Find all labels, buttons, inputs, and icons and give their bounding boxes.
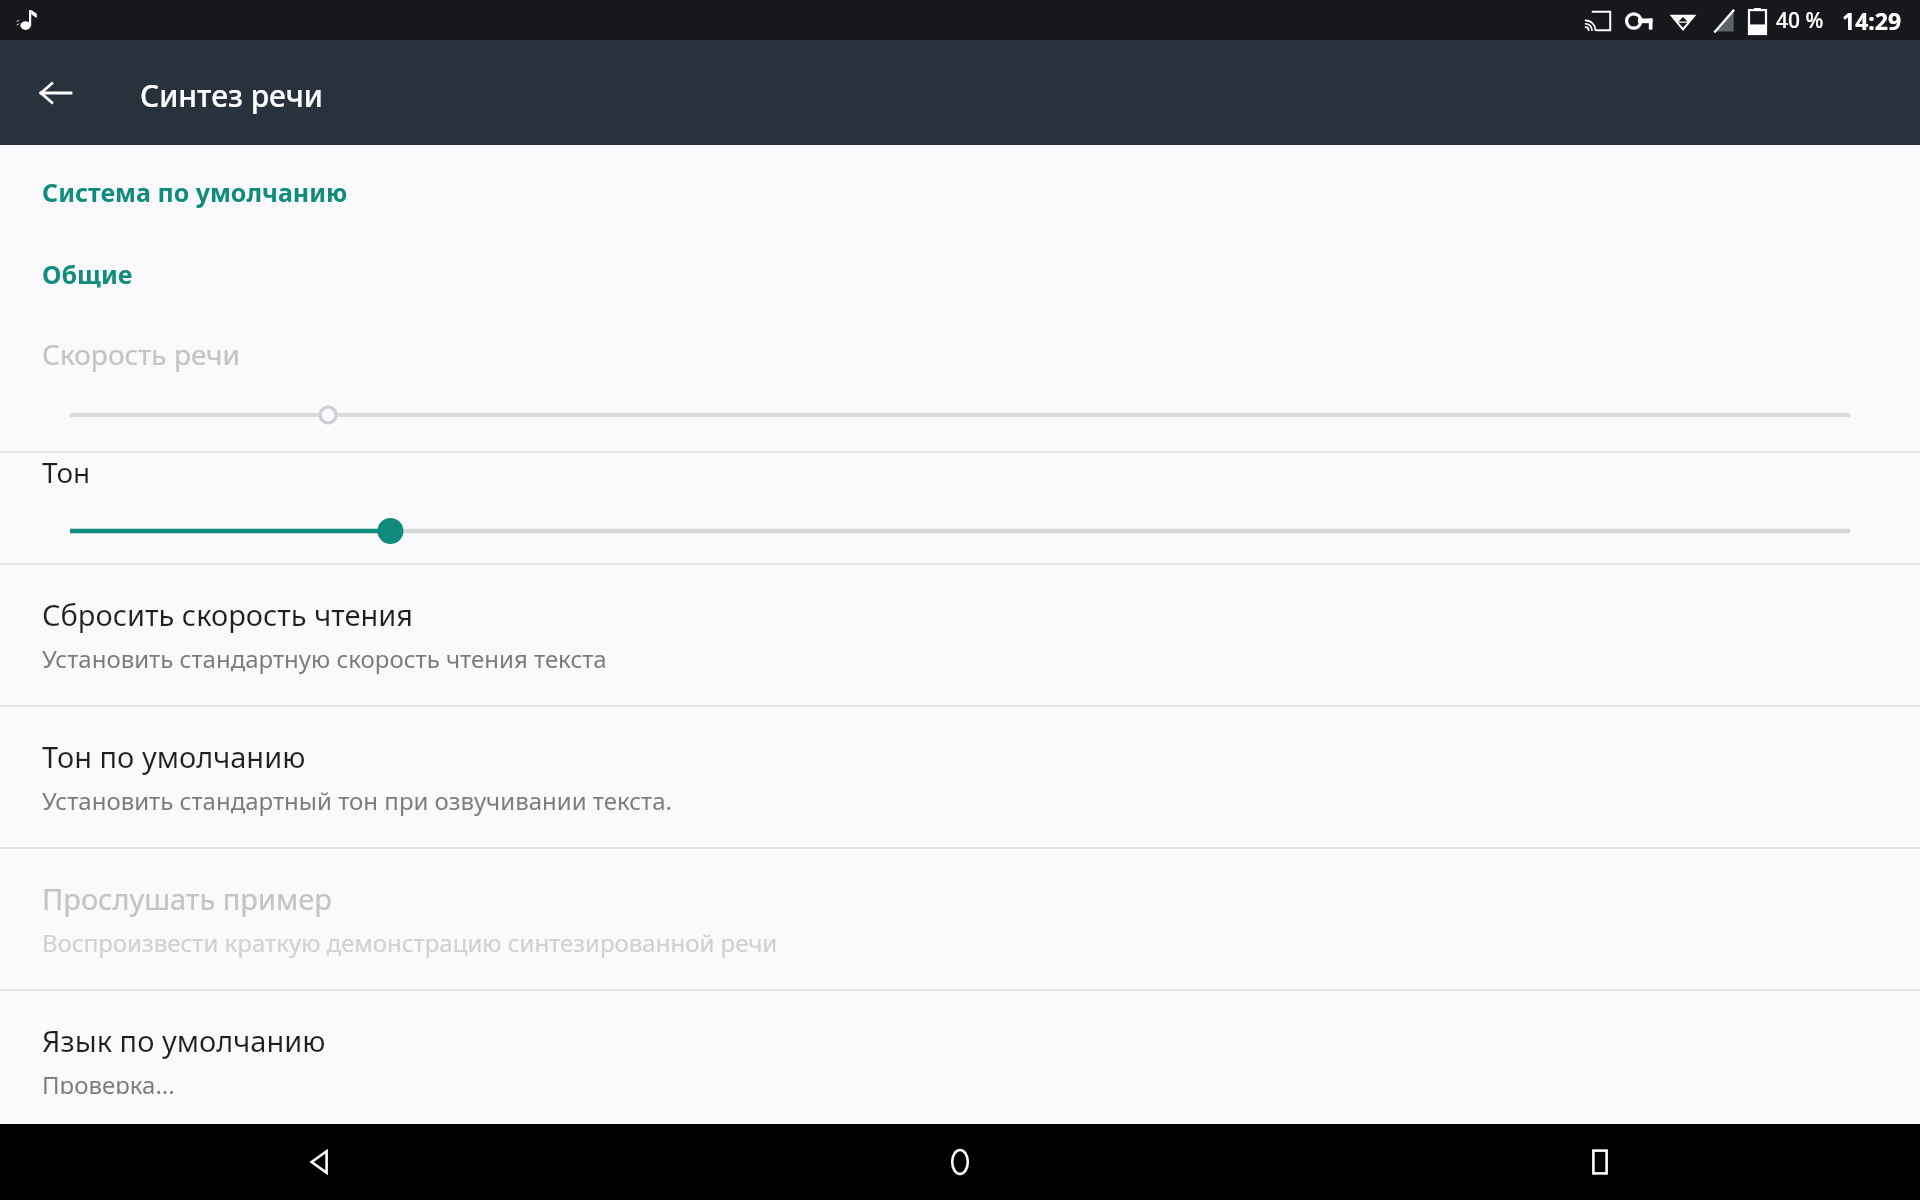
- staticText: Общие: [42, 257, 133, 291]
- staticText: Сбросить скорость чтения: [42, 595, 413, 634]
- staticText: Установить стандартную скорость чтения т…: [42, 642, 607, 675]
- staticText: Синтез речи: [140, 75, 323, 116]
- button[interactable]: Скорость речи: [0, 335, 1920, 451]
- button[interactable]: Назад: [28, 65, 84, 121]
- staticText: 40 %: [1776, 6, 1824, 35]
- button[interactable]: Сбросить скорость чтения: [0, 565, 1920, 705]
- staticText: Тон по умолчанию: [42, 737, 306, 776]
- staticText: Прослушать пример: [42, 879, 332, 918]
- staticText: Проверка...: [42, 1068, 175, 1094]
- button[interactable]: Тон по умолчанию: [0, 707, 1920, 847]
- button[interactable]: Тон: [0, 453, 1920, 563]
- button[interactable]: Назад: [0, 1124, 640, 1200]
- button[interactable]: Прослушать пример: [0, 849, 1920, 989]
- staticText: Система по умолчанию: [42, 175, 348, 209]
- staticText: 14:29: [1842, 5, 1902, 36]
- staticText: Тон: [42, 453, 91, 491]
- staticText: Язык по умолчанию: [42, 1021, 326, 1060]
- staticText: Скорость речи: [42, 335, 240, 373]
- staticText: Установить стандартный тон при озвучиван…: [42, 784, 672, 817]
- staticText: Воспроизвести краткую демонстрацию синте…: [42, 926, 778, 959]
- button[interactable]: Обзор: [1280, 1124, 1920, 1200]
- button[interactable]: Главный экран: [640, 1124, 1280, 1200]
- button[interactable]: Язык по умолчанию: [0, 991, 1920, 1124]
